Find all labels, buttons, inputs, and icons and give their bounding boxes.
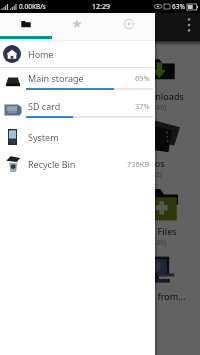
button[interactable]: Favorites — [51, 13, 103, 36]
button[interactable]: Files from... — [136, 253, 198, 302]
staticText: 846 (146) — [4, 103, 35, 113]
staticText: 846 (146) — [136, 103, 167, 113]
button[interactable]: Files — [0, 13, 51, 36]
button[interactable]: New Files — [136, 188, 198, 248]
button[interactable]: System — [0, 123, 155, 150]
staticText: 12:29 — [92, 2, 110, 12]
staticText: 37% — [135, 101, 150, 111]
staticText: 0.00KB/s — [19, 2, 46, 11]
staticText: 69% — [135, 73, 150, 83]
button[interactable]: Videos — [4, 120, 66, 180]
button[interactable]: Videos — [70, 120, 132, 180]
staticText: System — [28, 131, 59, 143]
staticText: Files from... — [136, 290, 186, 302]
staticText: New Files — [136, 225, 177, 237]
button[interactable]: Downloads — [70, 53, 132, 113]
button[interactable]: Home — [0, 41, 155, 67]
staticText: Main storage — [28, 72, 84, 84]
staticText: Videos — [70, 157, 99, 169]
staticText: 98 (132) — [136, 170, 163, 180]
staticText: Home — [28, 48, 54, 60]
staticText: 98 (132) — [4, 170, 31, 180]
staticText: Downloads — [136, 90, 184, 102]
staticText: 63% — [172, 2, 185, 11]
button[interactable]: Recycle Bin — [0, 150, 155, 177]
staticText: SD card — [28, 100, 61, 112]
button[interactable]: Main storage — [0, 68, 155, 96]
button[interactable]: More options — [182, 16, 196, 34]
button[interactable]: Videos — [136, 120, 198, 180]
staticText: Videos — [136, 157, 165, 169]
button[interactable]: SD card — [0, 96, 155, 124]
staticText: 846 (136) — [136, 238, 167, 248]
button[interactable]: Downloads — [136, 53, 198, 113]
staticText: Videos — [4, 157, 33, 169]
staticText: Recycle Bin — [28, 158, 76, 170]
staticText: 736KB — [127, 159, 150, 169]
button[interactable]: Downloads — [4, 53, 66, 113]
button[interactable]: Recent — [103, 13, 155, 36]
